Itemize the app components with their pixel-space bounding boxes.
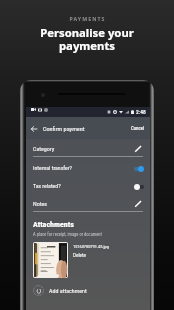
button[interactable]: Edit <box>133 199 143 209</box>
staticText: Confirm payment <box>43 125 85 132</box>
staticText: A place for receipt, image or document <box>33 232 102 237</box>
button[interactable]: Edit <box>133 144 143 154</box>
button[interactable]: Cancel <box>126 122 150 134</box>
button[interactable]: Notes <box>33 198 143 212</box>
staticText: Notes <box>33 200 48 207</box>
staticText: Tax related? <box>33 183 61 190</box>
button[interactable]: Tax related? <box>33 181 143 192</box>
staticText: Add attachment <box>49 287 87 294</box>
staticText: Delete <box>73 252 86 258</box>
button[interactable]: Back <box>27 122 40 135</box>
button[interactable]: Category <box>33 143 143 157</box>
button[interactable]: Delete <box>73 252 86 258</box>
button[interactable]: Internal transfer? <box>33 163 143 174</box>
staticText: Category <box>33 145 55 152</box>
button[interactable]: Internal transfer toggle <box>134 166 143 172</box>
staticText: PAYMENTS <box>69 15 106 22</box>
staticText: Internal transfer? <box>33 165 72 172</box>
staticText: 2:48 <box>136 109 146 115</box>
button[interactable]: Tax related toggle <box>134 184 143 190</box>
staticText: 15160780791.45.jpg <box>73 244 109 249</box>
staticText: Attachments <box>33 220 74 229</box>
staticText: Personalise your payments <box>40 25 134 53</box>
button[interactable]: Add attachment <box>33 283 143 297</box>
staticText: Cancel <box>131 125 145 131</box>
